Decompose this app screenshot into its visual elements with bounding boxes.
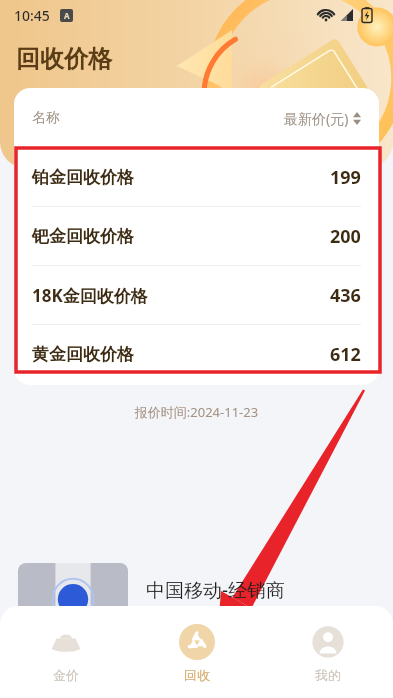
- button[interactable]: 回收: [131, 616, 262, 689]
- button[interactable]: 黄金回收价格: [14, 325, 379, 383]
- staticText: 199: [330, 165, 361, 190]
- staticText: 最新价(元): [284, 109, 349, 128]
- button[interactable]: 钯金回收价格: [14, 207, 379, 265]
- staticText: 铂金回收价格: [32, 167, 134, 188]
- other: 回收: [179, 624, 215, 660]
- staticText: 回收价格: [16, 44, 112, 74]
- staticText: 18K金回收价格: [32, 284, 148, 307]
- staticText: 报价时间:2024-11-23: [0, 403, 393, 421]
- button[interactable]: 最新价(元): [284, 109, 361, 128]
- staticText: 钯金回收价格: [32, 226, 134, 247]
- staticText: 436: [330, 283, 361, 308]
- other: 金价: [49, 625, 83, 659]
- staticText: 200: [330, 224, 361, 249]
- staticText: 10:45: [14, 6, 50, 25]
- other: 我的: [311, 625, 345, 659]
- staticText: 612: [330, 342, 361, 367]
- button[interactable]: 我的: [262, 616, 393, 689]
- staticText: 我的: [315, 667, 341, 683]
- button[interactable]: 金价: [0, 616, 131, 689]
- button[interactable]: 中国移动-经销商: [0, 563, 393, 633]
- staticText: 中国移动-经销商: [146, 577, 286, 603]
- staticText: 黄金回收价格: [32, 344, 134, 365]
- staticText: 回收: [184, 667, 210, 683]
- staticText: 名称: [32, 109, 60, 127]
- staticText: A: [64, 10, 70, 21]
- button[interactable]: 铂金回收价格: [14, 148, 379, 206]
- staticText: 金价: [53, 667, 79, 683]
- button[interactable]: 18K金回收价格: [14, 266, 379, 324]
